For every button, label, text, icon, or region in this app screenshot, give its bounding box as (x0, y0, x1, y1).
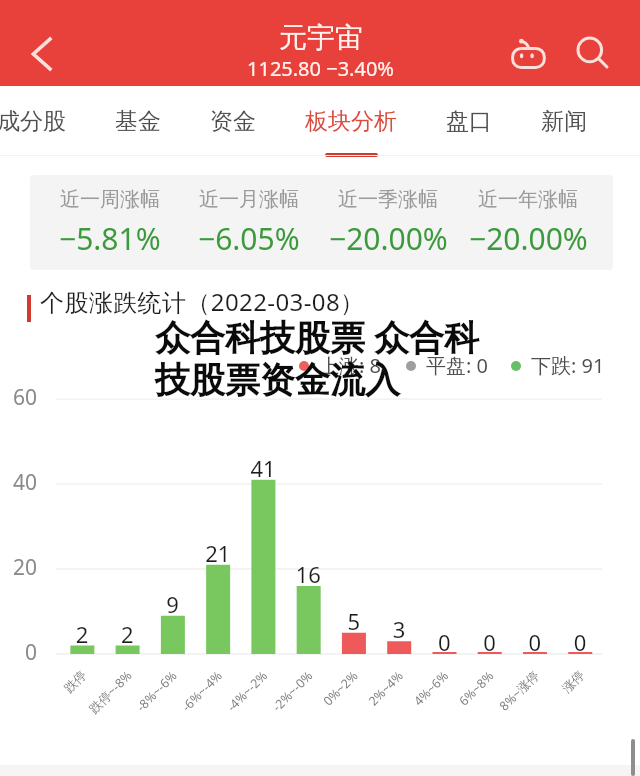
staticText: 众合科技股票 众合科技股票资金流入 (155, 313, 486, 403)
button[interactable]: Search (566, 27, 618, 79)
staticText: −20.00% (469, 218, 588, 259)
staticText: 元宇宙 (279, 20, 363, 55)
staticText: 下跌: 91 (531, 352, 605, 379)
staticText: 近一季涨幅 (338, 187, 438, 212)
staticText: 近一周涨幅 (60, 187, 160, 212)
staticText: 个股涨跌统计（2022-03-08） (40, 285, 365, 318)
staticText: 基金 (115, 107, 161, 136)
staticText: 近一月涨幅 (199, 187, 299, 212)
button[interactable]: 新闻 (541, 86, 587, 156)
staticText: 1125.80 −3.40% (247, 55, 394, 82)
button[interactable]: 资金 (210, 86, 256, 156)
button[interactable]: 盘口 (446, 86, 492, 156)
button[interactable]: 基金 (115, 86, 161, 156)
staticText: 近一年涨幅 (478, 187, 578, 212)
button[interactable]: AI assistant (502, 27, 554, 79)
staticText: 资金 (210, 107, 256, 136)
button[interactable]: 成分股 (0, 86, 66, 156)
staticText: 板块分析 (305, 107, 397, 136)
staticText: 盘口 (446, 107, 492, 136)
staticText: 平盘: 0 (426, 352, 488, 379)
button[interactable]: Back (16, 28, 68, 80)
staticText: −6.05% (198, 218, 300, 259)
staticText: 新闻 (541, 107, 587, 136)
staticText: 成分股 (0, 107, 66, 136)
button[interactable]: 板块分析 (305, 86, 397, 156)
staticText: −20.00% (329, 218, 448, 259)
staticText: −5.81% (59, 218, 161, 259)
staticText: 上涨: 8 (319, 352, 381, 379)
